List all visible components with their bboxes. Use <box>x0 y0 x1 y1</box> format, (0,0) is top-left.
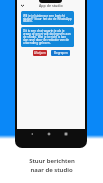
button[interactable]: Wil je je luisteraar een bericht sturen?… <box>21 11 74 25</box>
button[interactable]: Back <box>30 132 34 136</box>
staticText: Dit is een chat waarin je als je vraag o… <box>23 29 72 45</box>
staticText: Stuur berichten <box>29 157 75 165</box>
button[interactable]: Home <box>47 132 51 136</box>
button[interactable]: Recent apps <box>64 132 68 136</box>
staticText: App de studio <box>39 3 63 8</box>
staticText: naar de studio <box>30 166 73 174</box>
button[interactable]: Dit is een chat waarin je als je vraag o… <box>21 27 74 47</box>
staticText: Begrepen <box>54 51 68 55</box>
button[interactable]: Collapse <box>20 3 25 8</box>
button[interactable]: Begrepen <box>51 50 70 56</box>
staticText: Afwijzen <box>34 51 46 55</box>
staticText: Wil je je luisteraar een bericht sturen?… <box>23 14 72 23</box>
button[interactable]: Afwijzen <box>33 50 47 56</box>
